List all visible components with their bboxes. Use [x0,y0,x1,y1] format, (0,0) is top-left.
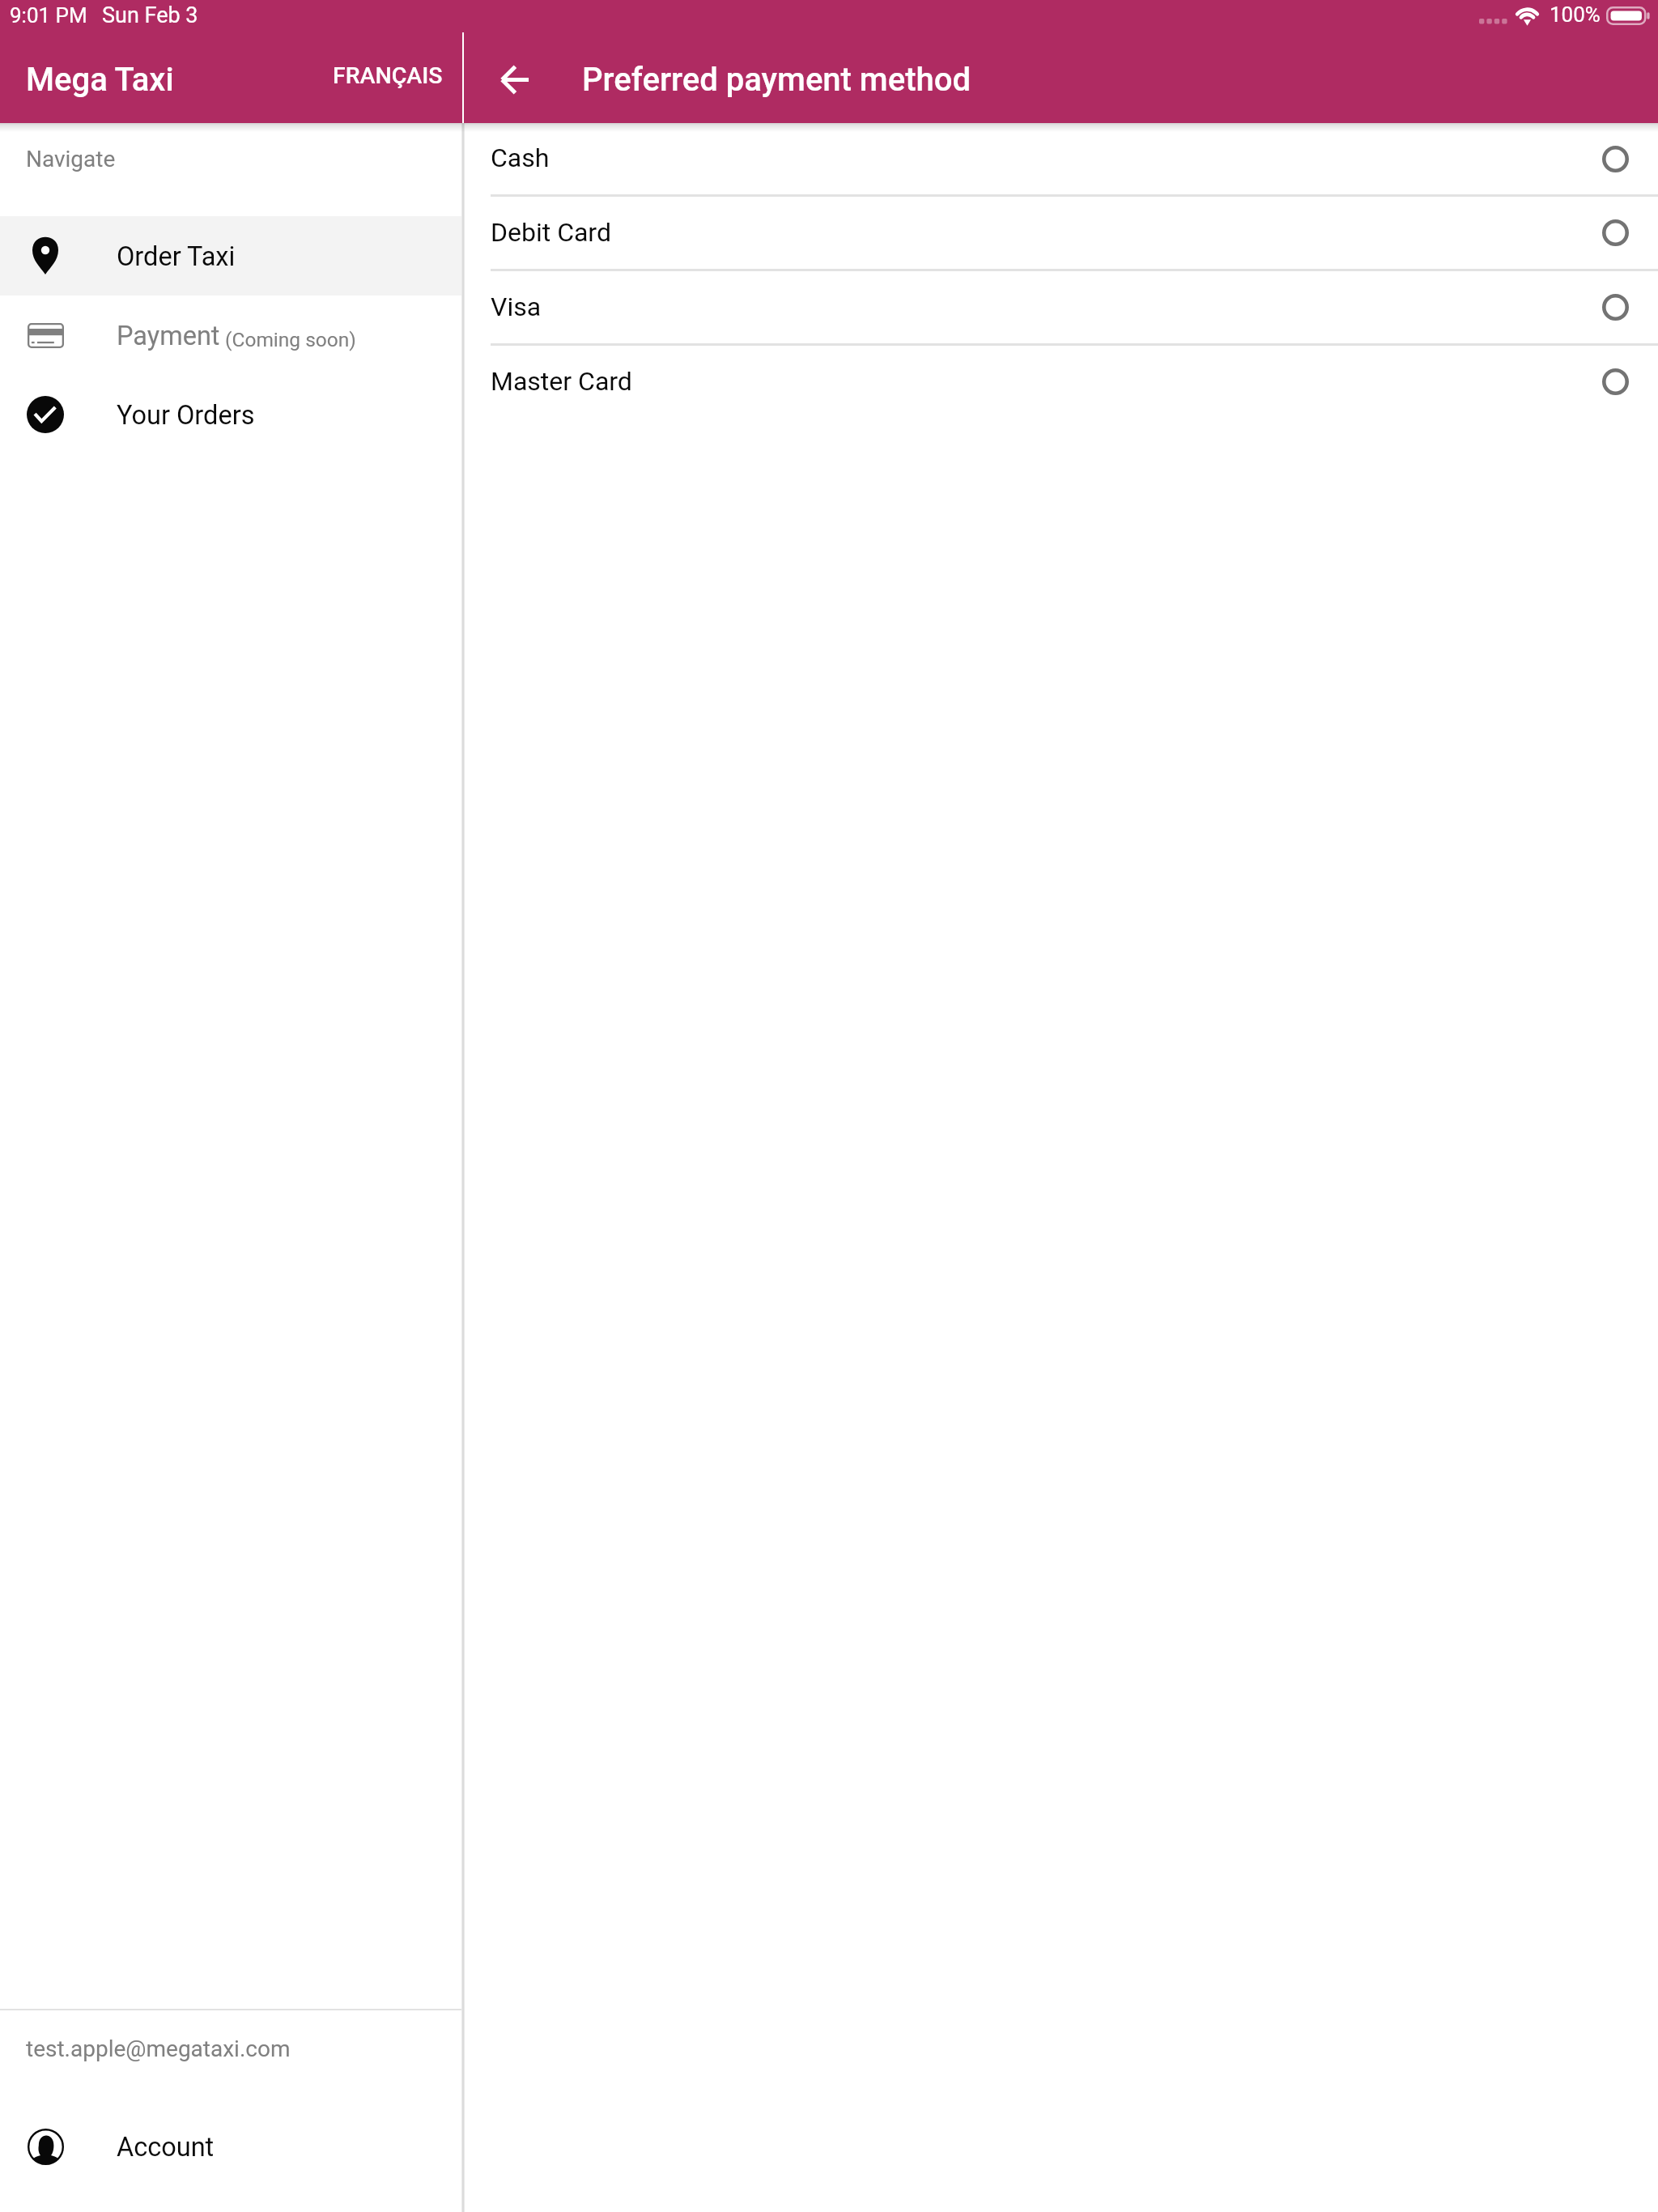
staticText: Your Orders [117,400,255,431]
staticText: 100% [1550,2,1601,27]
staticText: Payment [117,321,220,351]
button[interactable]: Master Card [464,346,1658,418]
button[interactable]: Debit Card [464,197,1658,269]
staticText: (Coming soon) [220,328,356,351]
button[interactable]: FRANÇAIS [313,36,462,123]
staticText: Mega Taxi [26,61,174,99]
staticText: Cash [491,143,550,173]
staticText: Master Card [491,366,632,397]
button[interactable]: Back [475,40,553,118]
staticText: test.apple@megataxi.com [26,2035,291,2062]
staticText: Visa [491,291,542,322]
staticText: 9:01 PM [10,3,87,28]
staticText: Sun Feb 3 [102,2,198,28]
button[interactable]: Account [0,2107,462,2186]
button[interactable]: Your Orders [0,375,462,454]
button[interactable]: Order Taxi [0,216,462,296]
staticText: FRANÇAIS [333,62,443,89]
button[interactable]: Visa [464,271,1658,343]
staticText: Debit Card [491,217,611,248]
button[interactable]: Payment [0,296,462,375]
staticText: Account [117,2132,215,2163]
staticText: Preferred payment method [582,61,971,99]
button[interactable]: Cash [464,123,1658,194]
staticText: Order Taxi [117,241,236,272]
staticText: Navigate [26,146,116,172]
